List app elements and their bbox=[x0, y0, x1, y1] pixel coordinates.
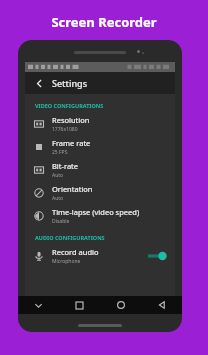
staticText: Record audio bbox=[52, 247, 99, 257]
staticText: Auto bbox=[52, 195, 64, 202]
button[interactable]: Back bbox=[141, 296, 182, 314]
staticText: 25 FPS bbox=[52, 149, 68, 156]
staticText: Bit-rate bbox=[52, 161, 79, 171]
button[interactable]: Orientation bbox=[25, 181, 175, 204]
staticText: Disable bbox=[52, 218, 70, 225]
staticText: Settings bbox=[52, 77, 88, 89]
button[interactable]: Resolution bbox=[25, 112, 175, 135]
staticText: VIDEO CONFIGURATIONS bbox=[35, 102, 104, 109]
button[interactable]: Hide keyboard bbox=[18, 296, 59, 314]
staticText: Orientation bbox=[52, 184, 93, 194]
staticText: Auto bbox=[52, 172, 64, 179]
staticText: Microphone bbox=[52, 258, 81, 265]
staticText: AUDIO CONFIGURATIONS bbox=[35, 234, 105, 241]
button[interactable]: Bit-rate bbox=[25, 158, 175, 181]
button[interactable]: Record audio bbox=[25, 244, 175, 267]
button[interactable]: Recents bbox=[59, 296, 100, 314]
staticText: 1776x1080 bbox=[52, 126, 78, 133]
button[interactable]: Home bbox=[100, 296, 141, 314]
button[interactable]: Record audio toggle bbox=[147, 250, 167, 262]
staticText: Resolution bbox=[52, 115, 90, 125]
staticText: Time-lapse (video speed) bbox=[52, 207, 140, 217]
button[interactable]: Back bbox=[30, 74, 48, 92]
button[interactable]: Frame rate bbox=[25, 135, 175, 158]
staticText: Screen Recorder bbox=[0, 13, 208, 31]
staticText: Frame rate bbox=[52, 138, 91, 148]
button[interactable]: Time-lapse (video speed) bbox=[25, 204, 175, 227]
